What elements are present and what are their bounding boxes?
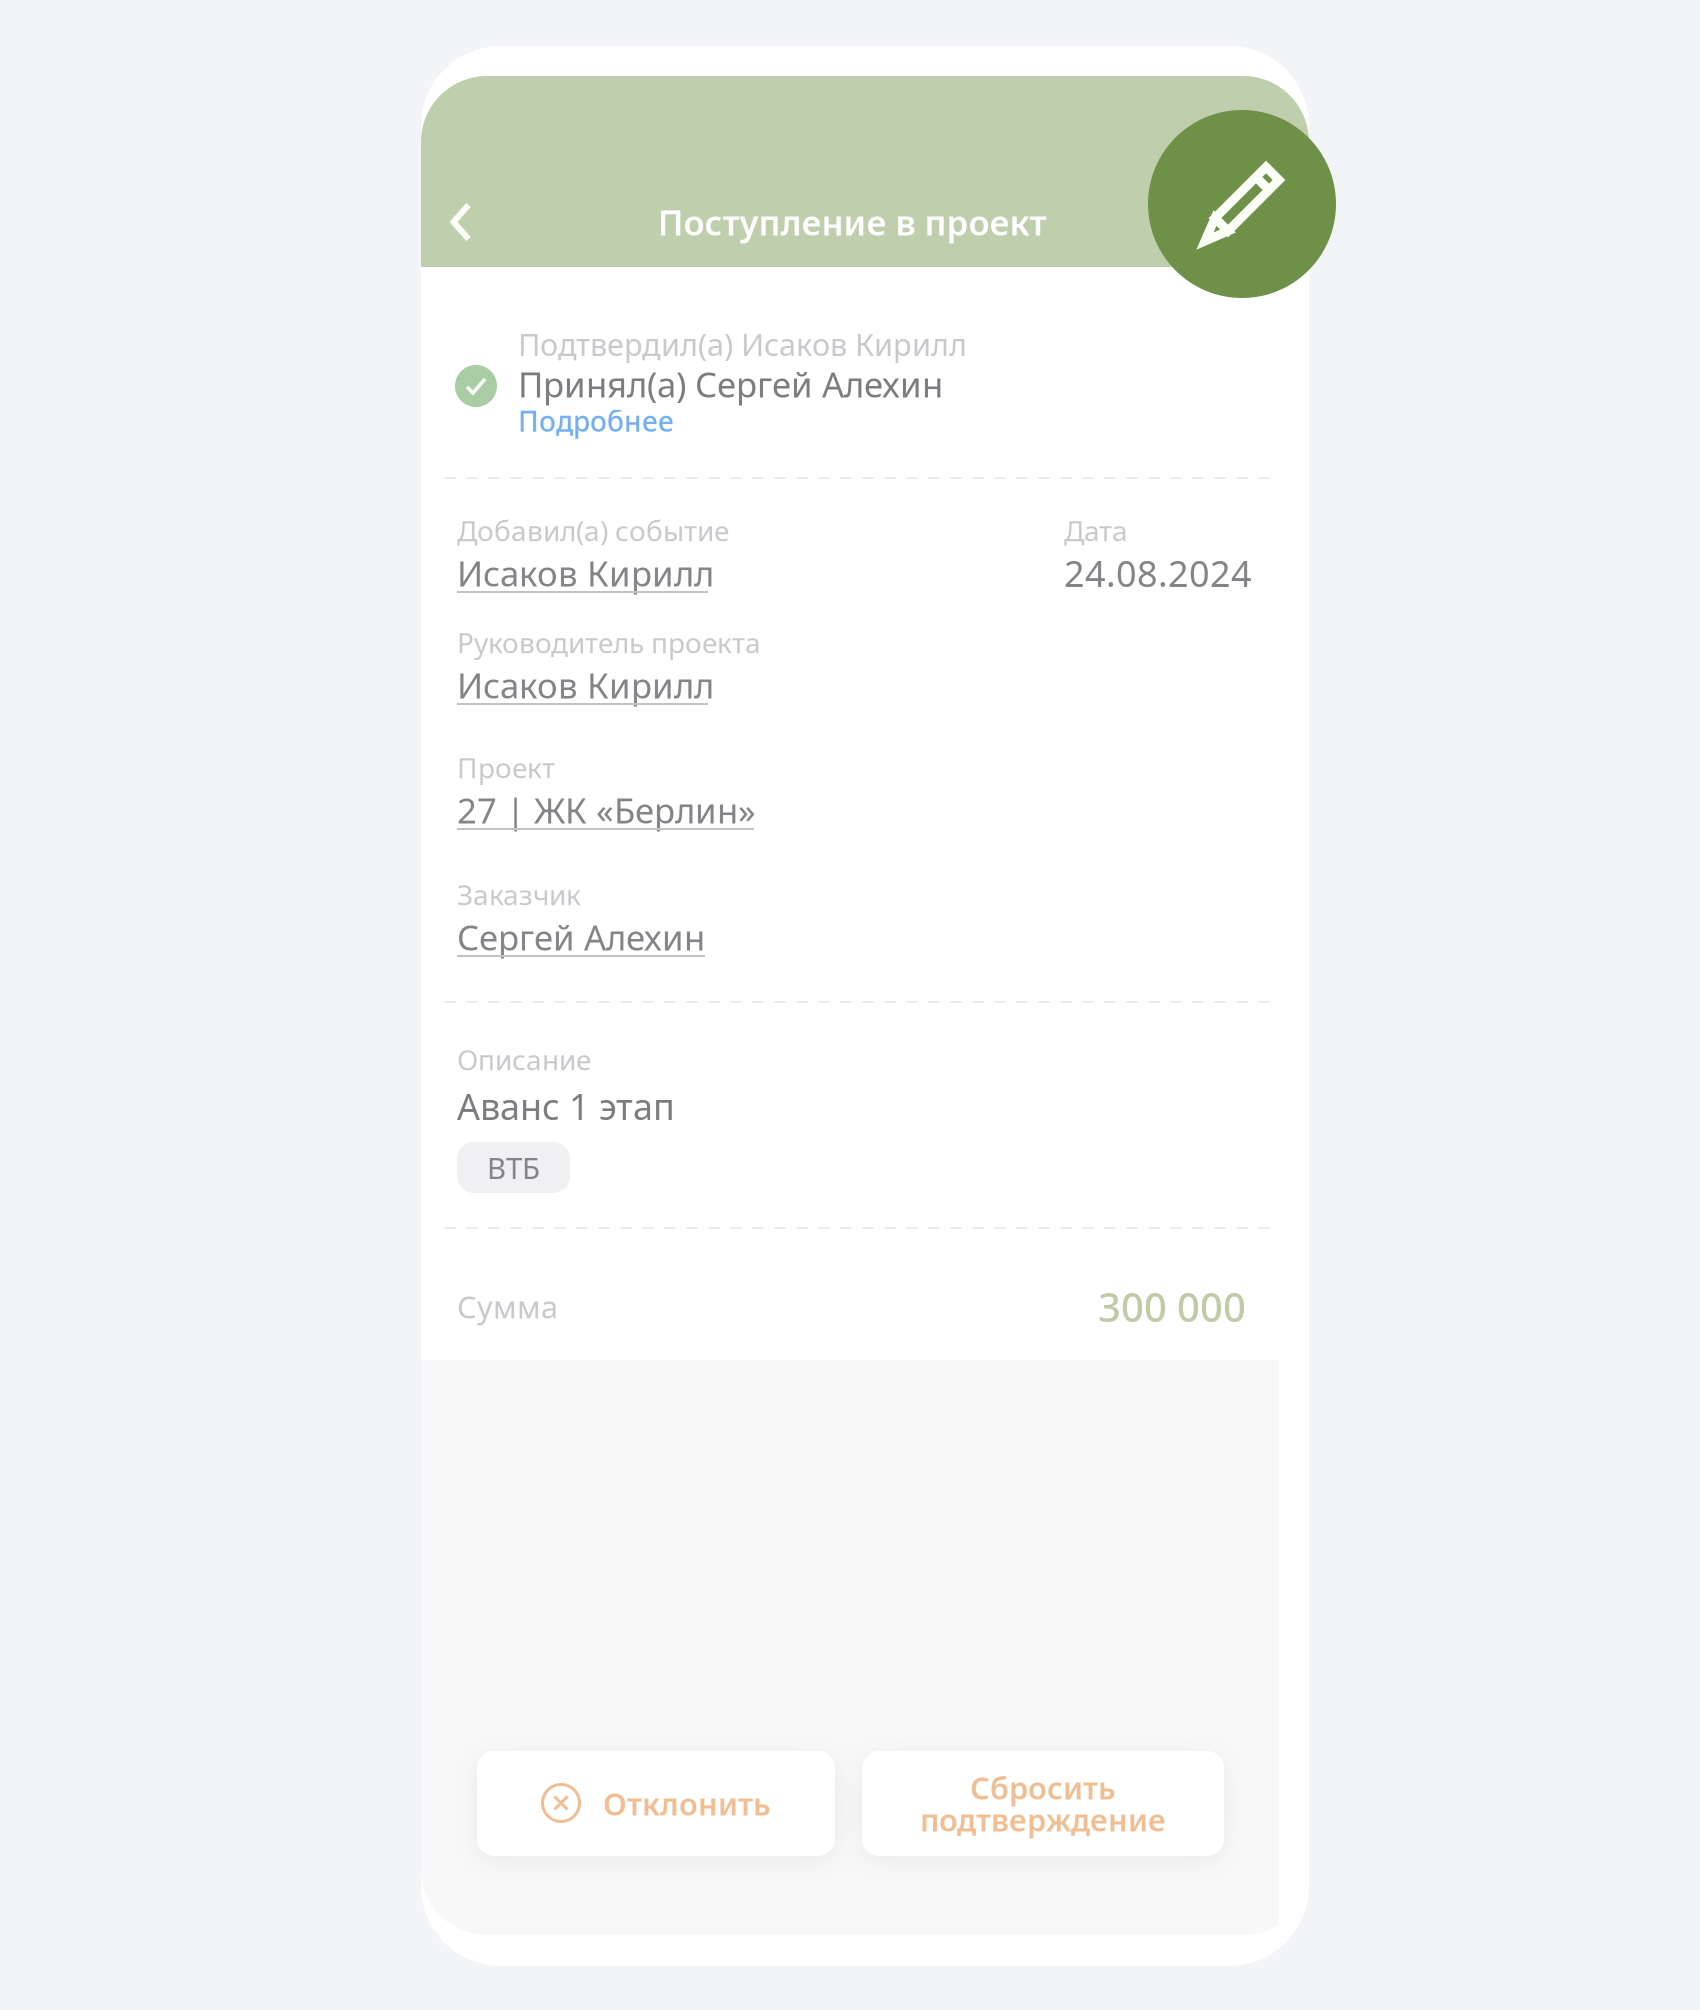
button[interactable]: Исаков Кирилл <box>457 556 714 593</box>
staticText: Аванс 1 этап <box>457 1082 675 1130</box>
button[interactable]: Исаков Кирилл <box>457 668 714 705</box>
staticText: Сумма <box>457 1286 558 1327</box>
staticText: 24.08.2024 <box>1064 549 1252 597</box>
staticText: Отклонить <box>603 1783 771 1824</box>
button[interactable]: Отклонить <box>477 1751 835 1856</box>
staticText: Поступление в проект <box>657 199 1046 245</box>
button[interactable]: Сергей Алехин <box>457 920 705 957</box>
staticText: ВТБ <box>487 1148 540 1187</box>
button[interactable]: Редактировать <box>1148 110 1336 298</box>
staticText: Сергей Алехин <box>457 914 705 960</box>
button[interactable]: Назад <box>421 192 501 252</box>
button[interactable]: Сбросить <box>862 1751 1224 1856</box>
button[interactable]: 27 | ЖК «Берлин» <box>457 793 756 830</box>
staticText: Проект <box>457 749 555 786</box>
button[interactable]: Подробнее <box>518 407 674 435</box>
staticText: Исаков Кирилл <box>457 662 714 708</box>
staticText: 27 | ЖК «Берлин» <box>457 787 756 833</box>
staticText: подтверждение <box>920 1799 1166 1840</box>
staticText: Дата <box>1064 512 1128 549</box>
staticText: Описание <box>457 1041 591 1078</box>
staticText: Руководитель проекта <box>457 624 761 661</box>
staticText: Добавил(а) событие <box>457 512 729 549</box>
staticText: Принял(а) Сергей Алехин <box>518 361 943 407</box>
staticText: Исаков Кирилл <box>457 550 714 596</box>
staticText: Подтвердил(а) Исаков Кирилл <box>518 324 967 364</box>
staticText: Заказчик <box>457 876 581 913</box>
staticText: Подробнее <box>518 402 674 440</box>
staticText: Сбросить <box>970 1767 1116 1808</box>
button[interactable]: ВТБ <box>457 1142 570 1193</box>
staticText: 300 000 <box>1098 1280 1246 1333</box>
